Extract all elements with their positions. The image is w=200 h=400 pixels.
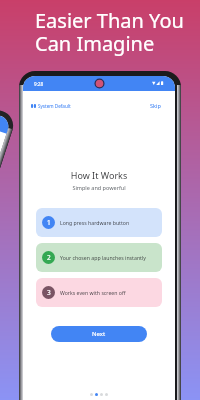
staticText: 1 (47, 218, 51, 227)
button[interactable]: 1 (36, 208, 162, 237)
button[interactable]: System Default (31, 103, 71, 109)
staticText: Your chosen app launches instantly (60, 254, 146, 261)
staticText: 2 (47, 253, 51, 262)
staticText: Next (92, 330, 106, 338)
staticText: Skip (150, 102, 161, 109)
button[interactable]: 3 (36, 278, 162, 307)
button[interactable]: 2 (36, 243, 162, 272)
staticText: System Default (38, 103, 71, 109)
staticText: 9:28 (34, 81, 44, 87)
staticText: Simple and powerful (23, 184, 175, 191)
staticText: Long press hardware button (60, 219, 130, 226)
staticText: Works even with screen off (60, 289, 126, 296)
staticText: 3 (47, 288, 51, 297)
staticText: How It Works (23, 169, 175, 181)
button[interactable]: Next (51, 326, 147, 342)
button[interactable]: Skip (150, 102, 161, 109)
staticText: Easier Than You Can Imagine (35, 7, 184, 56)
